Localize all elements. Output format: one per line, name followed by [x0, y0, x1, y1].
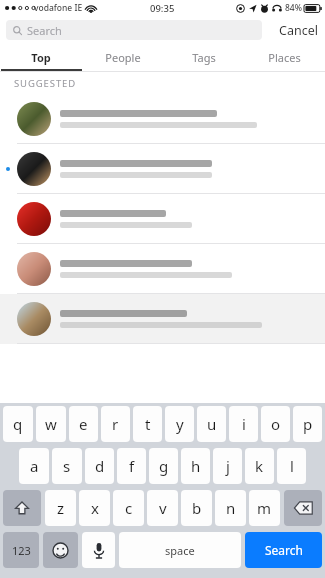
- button[interactable]: m: [249, 490, 280, 526]
- button[interactable]: i: [229, 406, 258, 442]
- staticText: q: [13, 414, 23, 434]
- staticText: z: [57, 498, 65, 518]
- staticText: p: [303, 414, 313, 434]
- staticText: m: [257, 498, 272, 518]
- button[interactable]: [0, 94, 325, 144]
- staticText: People: [105, 50, 141, 65]
- button[interactable]: s: [52, 448, 82, 484]
- button[interactable]: Search: [6, 20, 262, 40]
- button[interactable]: k: [245, 448, 274, 484]
- button[interactable]: u: [197, 406, 226, 442]
- staticText: Top: [31, 50, 51, 65]
- button[interactable]: Emoji: [43, 532, 78, 568]
- button[interactable]: Dictation: [82, 532, 115, 568]
- button[interactable]: Search: [245, 532, 322, 568]
- button[interactable]: g: [149, 448, 178, 484]
- button[interactable]: n: [215, 490, 246, 526]
- button[interactable]: p: [293, 406, 322, 442]
- button[interactable]: Backspace: [284, 490, 322, 526]
- button[interactable]: Tags: [163, 44, 244, 71]
- staticText: u: [207, 414, 217, 434]
- button[interactable]: [0, 294, 325, 344]
- staticText: o: [271, 414, 281, 434]
- staticText: x: [91, 498, 99, 518]
- button[interactable]: Places: [244, 44, 325, 71]
- button[interactable]: w: [36, 406, 66, 442]
- staticText: y: [176, 414, 184, 434]
- staticText: g: [159, 456, 169, 476]
- button[interactable]: h: [181, 448, 210, 484]
- staticText: h: [191, 456, 201, 476]
- staticText: j: [226, 456, 230, 476]
- staticText: s: [63, 456, 71, 476]
- staticText: v: [159, 498, 167, 518]
- button[interactable]: j: [213, 448, 242, 484]
- staticText: d: [95, 456, 105, 476]
- staticText: 84%: [285, 2, 302, 14]
- button[interactable]: a: [19, 448, 49, 484]
- staticText: c: [125, 498, 133, 518]
- button[interactable]: Shift: [3, 490, 41, 526]
- staticText: e: [79, 414, 88, 434]
- staticText: n: [226, 498, 236, 518]
- button[interactable]: Cancel: [272, 16, 325, 44]
- button[interactable]: space: [119, 532, 241, 568]
- staticText: Cancel: [279, 22, 318, 39]
- staticText: SUGGESTED: [14, 77, 77, 90]
- staticText: space: [165, 543, 195, 558]
- button[interactable]: [0, 244, 325, 294]
- staticText: l: [290, 456, 294, 476]
- button[interactable]: r: [101, 406, 130, 442]
- staticText: 09:35: [150, 2, 175, 15]
- staticText: a: [30, 456, 39, 476]
- staticText: b: [192, 498, 202, 518]
- button[interactable]: Top: [0, 44, 82, 71]
- button[interactable]: 123: [3, 532, 39, 568]
- button[interactable]: b: [181, 490, 212, 526]
- button[interactable]: e: [69, 406, 98, 442]
- staticText: Search: [265, 542, 303, 558]
- staticText: Search: [27, 23, 62, 38]
- button[interactable]: [0, 194, 325, 244]
- button[interactable]: d: [85, 448, 114, 484]
- staticText: vodafone IE: [34, 2, 83, 14]
- staticText: w: [45, 414, 57, 434]
- staticText: Tags: [192, 50, 216, 65]
- button[interactable]: l: [277, 448, 306, 484]
- button[interactable]: q: [3, 406, 33, 442]
- staticText: 123: [12, 543, 31, 558]
- button[interactable]: v: [147, 490, 178, 526]
- staticText: t: [145, 414, 151, 434]
- button[interactable]: z: [45, 490, 76, 526]
- staticText: i: [242, 414, 246, 434]
- staticText: f: [129, 456, 135, 476]
- button[interactable]: t: [133, 406, 162, 442]
- button[interactable]: People: [82, 44, 163, 71]
- button[interactable]: o: [261, 406, 290, 442]
- button[interactable]: f: [117, 448, 146, 484]
- button[interactable]: c: [113, 490, 144, 526]
- button[interactable]: x: [79, 490, 110, 526]
- staticText: r: [112, 414, 119, 434]
- staticText: k: [255, 456, 264, 476]
- button[interactable]: y: [165, 406, 194, 442]
- button[interactable]: [0, 144, 325, 194]
- staticText: Places: [268, 50, 301, 65]
